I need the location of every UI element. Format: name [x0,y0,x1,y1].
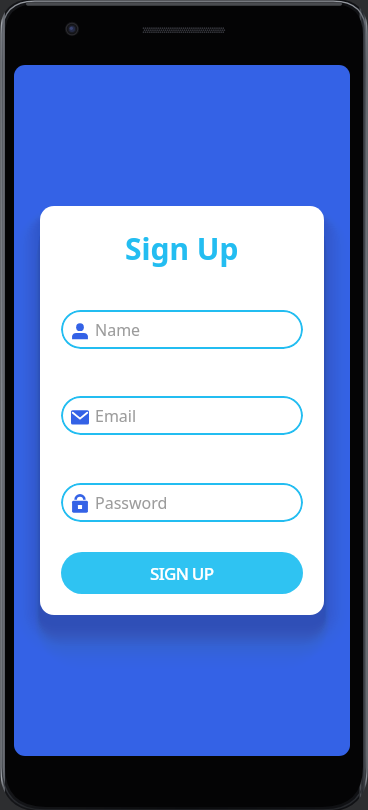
staticText: Email [95,405,137,427]
staticText: Sign Up [125,228,239,269]
button[interactable]: Sign up [61,552,303,594]
staticText: SIGN UP [150,562,214,585]
staticText: Password [95,492,168,514]
staticText: Name [95,319,141,341]
button[interactable]: Name [61,310,303,349]
button[interactable]: Password [61,483,303,522]
button[interactable]: Email [61,396,303,435]
